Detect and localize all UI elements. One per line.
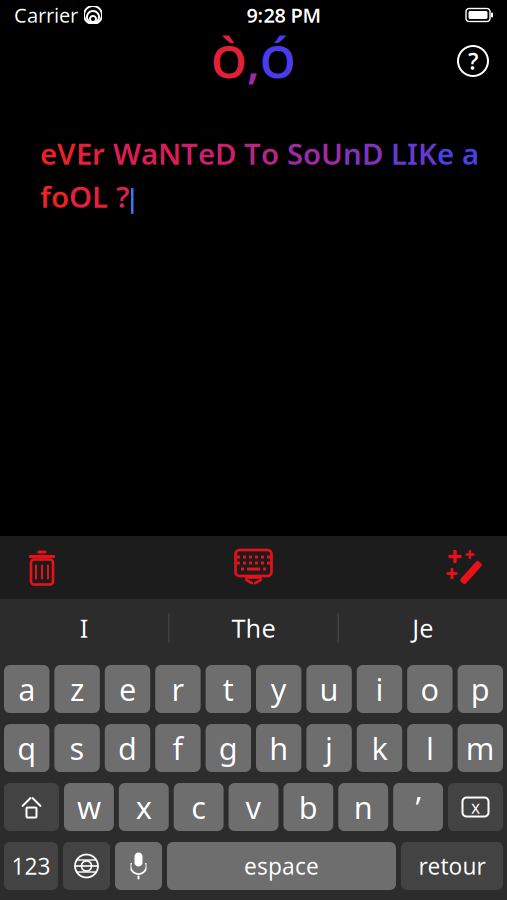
staticText: D (215, 134, 236, 173)
button[interactable]: t (206, 665, 251, 713)
staticText: E (76, 134, 92, 173)
staticText: n (354, 787, 373, 827)
staticText: a (462, 134, 479, 173)
button[interactable]: e (105, 665, 150, 713)
staticText: Je (412, 611, 433, 645)
button[interactable]: ’ (393, 783, 443, 831)
button[interactable]: n (338, 783, 388, 831)
staticText: e (119, 669, 136, 709)
staticText: 9:28 PM (246, 2, 321, 28)
button[interactable]: m (458, 724, 503, 772)
staticText: w (77, 787, 101, 827)
button[interactable]: s (54, 724, 100, 772)
staticText: f (172, 728, 183, 768)
button[interactable]: q (4, 724, 49, 772)
button[interactable]: u (306, 665, 352, 713)
button[interactable]: p (458, 665, 503, 713)
staticText: x (471, 795, 480, 818)
button[interactable]: r (155, 665, 201, 713)
button[interactable]: y (256, 665, 301, 713)
button[interactable]: d (105, 724, 150, 772)
staticText: , (247, 31, 260, 91)
staticText: a (18, 669, 35, 709)
button[interactable]: I (0, 599, 168, 657)
button[interactable]: b (283, 783, 333, 831)
staticText: Ò (211, 31, 247, 91)
staticText: d (118, 728, 137, 768)
staticText: h (269, 728, 288, 768)
staticText: f (40, 177, 51, 216)
staticText: r (92, 134, 105, 173)
staticText: 123 (11, 851, 50, 881)
staticText: g (219, 728, 238, 768)
button[interactable]: x (119, 783, 169, 831)
staticText: o (420, 669, 439, 709)
button[interactable]: Help (451, 39, 495, 83)
staticText: o (303, 134, 321, 173)
staticText: N (158, 134, 181, 173)
button[interactable]: Shift (4, 783, 59, 831)
button[interactable]: Next keyboard (63, 842, 110, 890)
staticText: j (325, 728, 333, 768)
staticText: e (198, 134, 215, 173)
button[interactable]: v (229, 783, 278, 831)
button[interactable]: g (206, 724, 251, 772)
button[interactable]: j (306, 724, 352, 772)
staticText: ? (468, 46, 478, 76)
staticText: q (17, 728, 36, 768)
staticText: The (231, 611, 275, 645)
staticText: k (371, 728, 387, 768)
staticText: z (70, 669, 84, 709)
button[interactable]: w (64, 783, 114, 831)
button[interactable]: k (357, 724, 402, 772)
button[interactable]: Hide keyboard (217, 536, 289, 598)
staticText: u (320, 669, 339, 709)
staticText: e (437, 134, 454, 173)
button[interactable]: Delete (448, 783, 503, 831)
button[interactable]: i (357, 665, 402, 713)
staticText: l (426, 728, 434, 768)
button[interactable]: Dictation (115, 842, 162, 890)
staticText: V (57, 134, 76, 173)
staticText: c (191, 787, 206, 827)
staticText: a (141, 134, 158, 173)
staticText: v (245, 787, 261, 827)
button[interactable]: espace (167, 842, 396, 890)
staticText: m (466, 728, 495, 768)
staticText: W (113, 134, 141, 173)
staticText: T (181, 134, 198, 173)
staticText: r (171, 669, 184, 709)
staticText: o (261, 134, 279, 173)
staticText: S (287, 134, 303, 173)
staticText: D (362, 134, 383, 173)
button[interactable]: retour (401, 842, 503, 890)
button[interactable]: Clear text (6, 536, 78, 598)
staticText: x (136, 787, 152, 827)
button[interactable]: o (407, 665, 453, 713)
staticText: Ó (260, 31, 296, 91)
staticText: L (391, 134, 407, 173)
staticText: retour (418, 851, 485, 881)
staticText: b (299, 787, 318, 827)
button[interactable]: f (155, 724, 201, 772)
button[interactable]: 123 (4, 842, 58, 890)
button[interactable]: Je (339, 599, 507, 657)
button[interactable]: z (54, 665, 100, 713)
staticText: T (244, 134, 261, 173)
button[interactable]: c (174, 783, 224, 831)
button[interactable]: l (407, 724, 453, 772)
staticText: U (321, 134, 343, 173)
button[interactable]: Transform text (429, 536, 501, 598)
staticText: O (69, 177, 92, 216)
button[interactable]: The (169, 599, 338, 657)
staticText: espace (244, 851, 319, 881)
button[interactable]: h (256, 724, 301, 772)
staticText: I (80, 611, 89, 645)
staticText: ? (116, 177, 130, 216)
button[interactable]: a (4, 665, 49, 713)
